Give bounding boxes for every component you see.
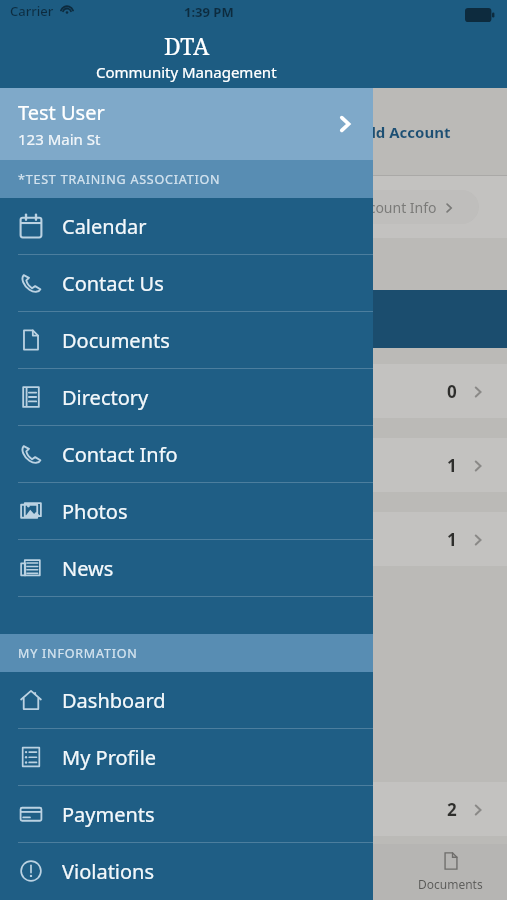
staticText: 1:39 PM — [184, 3, 234, 21]
staticText: MY INFORMATION — [18, 645, 138, 662]
staticText: Payments — [62, 801, 155, 828]
staticText: Add Account — [356, 122, 451, 142]
staticText: *TEST TRAINING ASSOCIATION — [18, 171, 221, 188]
button[interactable]: Account Info — [329, 190, 479, 224]
staticText: Directory — [62, 384, 149, 411]
button[interactable]: My Profile — [0, 729, 373, 785]
staticText: 2 — [447, 798, 457, 821]
button[interactable]: Contact Info — [0, 426, 373, 482]
button[interactable]: 1 — [0, 438, 507, 492]
staticText: Contact Info — [62, 441, 178, 468]
staticText: Account Info — [353, 198, 437, 217]
button[interactable]: News — [0, 540, 373, 596]
button[interactable]: Test User — [0, 88, 373, 160]
staticText: News — [62, 555, 114, 582]
staticText: Violations — [62, 858, 155, 885]
button[interactable]: 0 — [0, 364, 507, 418]
staticText: Photos — [62, 498, 128, 525]
staticText: Carrier — [10, 2, 54, 20]
staticText: Documents — [418, 876, 483, 892]
staticText: My Profile — [62, 744, 157, 771]
button[interactable]: Add Account — [0, 88, 507, 175]
staticText: Dashboard — [62, 687, 166, 714]
button[interactable]: 1 — [0, 512, 507, 566]
staticText: 1 — [447, 454, 457, 477]
button[interactable]: Contact Us — [0, 255, 373, 311]
button[interactable]: Payments — [0, 786, 373, 842]
staticText: DTA — [164, 30, 210, 61]
button[interactable]: Violations — [0, 843, 373, 899]
button[interactable]: 2 — [0, 782, 507, 836]
staticText: Test User — [18, 99, 105, 126]
button[interactable]: Documents — [418, 850, 483, 892]
button[interactable]: Calendar — [0, 198, 373, 254]
staticText: Documents — [62, 327, 170, 354]
button[interactable]: Documents — [0, 312, 373, 368]
staticText: Contact Us — [62, 270, 164, 297]
staticText: 1 — [447, 528, 457, 551]
button[interactable]: Dashboard — [0, 672, 373, 728]
staticText: 0 — [447, 380, 457, 403]
staticText: Community Management — [96, 62, 277, 82]
button[interactable]: Directory — [0, 369, 373, 425]
button[interactable]: Photos — [0, 483, 373, 539]
staticText: 123 Main St — [18, 129, 101, 149]
staticText: Calendar — [62, 213, 147, 240]
